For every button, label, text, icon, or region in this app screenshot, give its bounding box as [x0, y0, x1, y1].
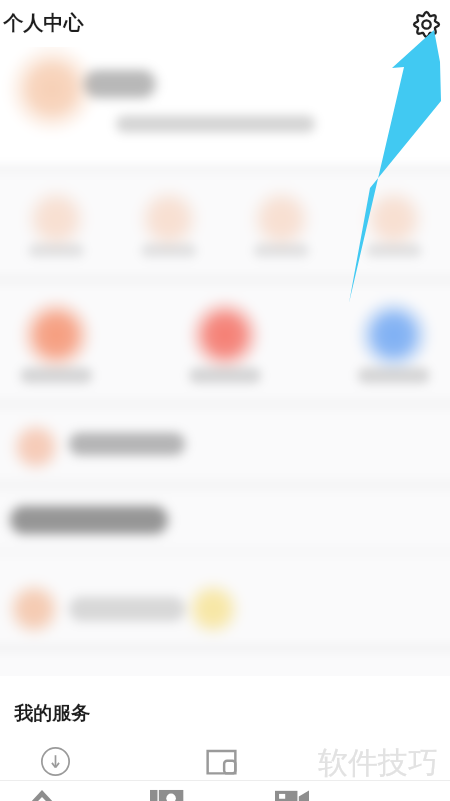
- staticText: 个人中心: [3, 11, 83, 36]
- staticText: 软件技巧: [318, 744, 438, 782]
- button[interactable]: 卡券: [143, 786, 191, 801]
- button[interactable]: 邮件: [18, 786, 66, 801]
- button[interactable]: 视频: [268, 786, 316, 801]
- staticText: 我的服务: [14, 702, 90, 726]
- button[interactable]: 卡包: [180, 744, 262, 778]
- button[interactable]: 设置: [409, 7, 443, 41]
- button[interactable]: 下载: [14, 744, 96, 778]
